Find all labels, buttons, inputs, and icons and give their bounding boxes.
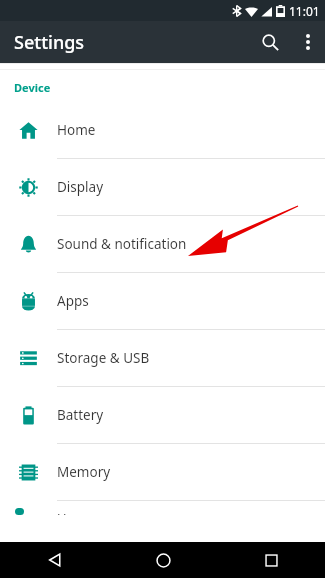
button[interactable]: Sound & notification <box>0 216 325 272</box>
button[interactable]: Search <box>249 21 291 63</box>
button[interactable]: Display <box>0 159 325 215</box>
staticText: Users <box>57 509 92 515</box>
staticText: Display <box>57 178 104 196</box>
button[interactable]: Storage & USB <box>0 330 325 386</box>
staticText: Sound & notification <box>57 235 187 253</box>
button[interactable]: Home <box>109 542 217 578</box>
staticText: Battery <box>57 406 104 424</box>
button[interactable]: Battery <box>0 387 325 443</box>
button[interactable]: More options <box>291 25 325 59</box>
staticText: Memory <box>57 463 111 481</box>
staticText: Device <box>14 80 51 95</box>
button[interactable]: Back <box>0 542 109 578</box>
button[interactable]: Recent apps <box>217 542 325 578</box>
button[interactable]: Apps <box>0 273 325 329</box>
staticText: Storage & USB <box>57 349 150 367</box>
button[interactable]: Home <box>0 102 325 158</box>
staticText: Settings <box>14 30 85 55</box>
staticText: 11:01 <box>289 3 320 19</box>
button[interactable]: Memory <box>0 444 325 500</box>
staticText: Apps <box>57 292 89 310</box>
staticText: Home <box>57 121 96 139</box>
